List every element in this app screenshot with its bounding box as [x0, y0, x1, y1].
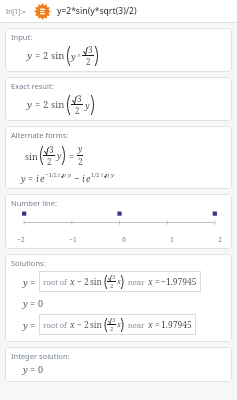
- staticText: ×: [77, 51, 81, 61]
- staticText: 1: [170, 235, 174, 244]
- staticText: e: [86, 172, 91, 184]
- staticText: 3: [107, 172, 110, 178]
- staticText: x: [117, 277, 121, 287]
- staticText: −: [77, 319, 82, 331]
- staticText: i: [101, 171, 103, 179]
- staticText: sin: [90, 276, 103, 288]
- staticText: y: [27, 98, 33, 111]
- staticText: 2: [78, 156, 83, 168]
- staticText: 2: [43, 98, 49, 111]
- staticText: y: [78, 143, 83, 155]
- staticText: =: [30, 363, 36, 375]
- staticText: y: [57, 150, 62, 162]
- staticText: x: [117, 320, 121, 330]
- staticText: 1/2: [91, 171, 100, 179]
- staticText: −: [74, 172, 80, 184]
- staticText: i: [58, 171, 60, 179]
- staticText: =: [30, 319, 36, 331]
- staticText: root of: [43, 320, 67, 330]
- staticText: y: [23, 297, 28, 309]
- staticText: sin: [51, 49, 65, 62]
- button[interactable]: In[1]:=: [6, 0, 231, 22]
- button[interactable]: Exact result:: [5, 77, 232, 121]
- staticText: 3: [49, 144, 54, 155]
- staticText: i: [82, 172, 85, 184]
- staticText: 2: [110, 325, 114, 333]
- staticText: y=2*sin(y*sqrt(3)/2): [57, 5, 137, 17]
- staticText: sin: [90, 319, 103, 331]
- staticText: i: [36, 172, 39, 184]
- staticText: =: [35, 49, 41, 62]
- button[interactable]: Input:: [5, 28, 232, 72]
- button[interactable]: Number line:: [5, 194, 232, 249]
- staticText: x: [70, 276, 75, 288]
- staticText: 3: [112, 316, 116, 324]
- staticText: x: [148, 319, 153, 331]
- staticText: =: [155, 319, 160, 331]
- staticText: =: [69, 150, 75, 162]
- staticText: 3: [112, 273, 116, 281]
- staticText: 0: [122, 235, 126, 244]
- staticText: 2: [84, 276, 89, 288]
- staticText: Alternate forms:: [11, 130, 69, 140]
- staticText: Solutions:: [11, 258, 46, 268]
- staticText: y: [71, 50, 76, 62]
- staticText: =: [28, 172, 34, 184]
- staticText: 2: [110, 282, 114, 290]
- staticText: y: [23, 363, 28, 375]
- staticText: =: [30, 297, 36, 309]
- staticText: Input:: [11, 32, 33, 42]
- staticText: =: [30, 276, 36, 288]
- staticText: e: [40, 172, 45, 184]
- staticText: 3: [64, 172, 67, 178]
- staticText: near: [128, 320, 145, 330]
- staticText: Number line:: [11, 198, 57, 208]
- staticText: −1.97945: [161, 276, 197, 288]
- staticText: 0: [38, 297, 44, 309]
- staticText: y: [23, 319, 28, 331]
- staticText: −1: [69, 235, 77, 244]
- staticText: 2: [47, 156, 52, 167]
- staticText: near: [128, 277, 145, 287]
- staticText: 3: [77, 93, 82, 104]
- staticText: y: [85, 99, 90, 111]
- staticText: y: [68, 171, 72, 179]
- staticText: −2: [17, 235, 25, 244]
- staticText: 2: [218, 235, 222, 244]
- staticText: y: [23, 276, 28, 288]
- staticText: In[1]:=: [6, 7, 26, 16]
- staticText: root of: [43, 277, 67, 287]
- staticText: sin: [25, 150, 38, 162]
- staticText: −: [77, 276, 82, 288]
- button[interactable]: Integer solution:: [5, 347, 232, 382]
- staticText: 2: [84, 319, 89, 331]
- staticText: Integer solution:: [11, 351, 70, 361]
- staticText: 2: [86, 56, 91, 67]
- staticText: x: [70, 319, 75, 331]
- staticText: 2: [75, 105, 80, 116]
- staticText: sin: [51, 98, 65, 111]
- button[interactable]: Alternate forms:: [5, 126, 232, 189]
- staticText: 0: [38, 363, 44, 375]
- staticText: y: [27, 49, 33, 62]
- staticText: y: [21, 172, 26, 184]
- other: Wolfram: [34, 3, 51, 20]
- staticText: Exact result:: [11, 81, 54, 91]
- button[interactable]: Solutions:: [5, 254, 232, 342]
- staticText: 1.97945: [161, 319, 192, 331]
- staticText: 3: [88, 44, 93, 55]
- staticText: −1/2: [45, 171, 57, 179]
- staticText: y: [111, 171, 115, 179]
- staticText: =: [35, 98, 41, 111]
- staticText: =: [155, 276, 160, 288]
- staticText: x: [148, 276, 153, 288]
- staticText: 2: [43, 49, 49, 62]
